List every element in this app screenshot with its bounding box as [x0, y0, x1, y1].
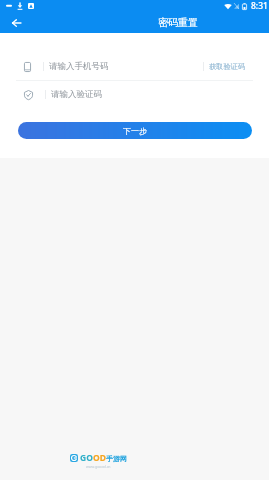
button[interactable]: Back	[0, 12, 32, 33]
staticText: 8:31	[251, 0, 268, 12]
button[interactable]: 获取验证码	[204, 62, 245, 71]
staticText: www.goood.cn	[86, 464, 111, 469]
staticText: GO	[80, 452, 93, 464]
button[interactable]: 下一步	[18, 122, 252, 139]
staticText: 请输入验证码	[51, 89, 245, 100]
staticText: 密码重置	[158, 16, 198, 29]
staticText: 手游网	[106, 454, 127, 463]
staticText: 下一步	[123, 126, 147, 136]
staticText: 请输入手机号码	[49, 61, 199, 72]
staticText: OD	[93, 452, 106, 464]
staticText: 获取验证码	[209, 62, 245, 71]
